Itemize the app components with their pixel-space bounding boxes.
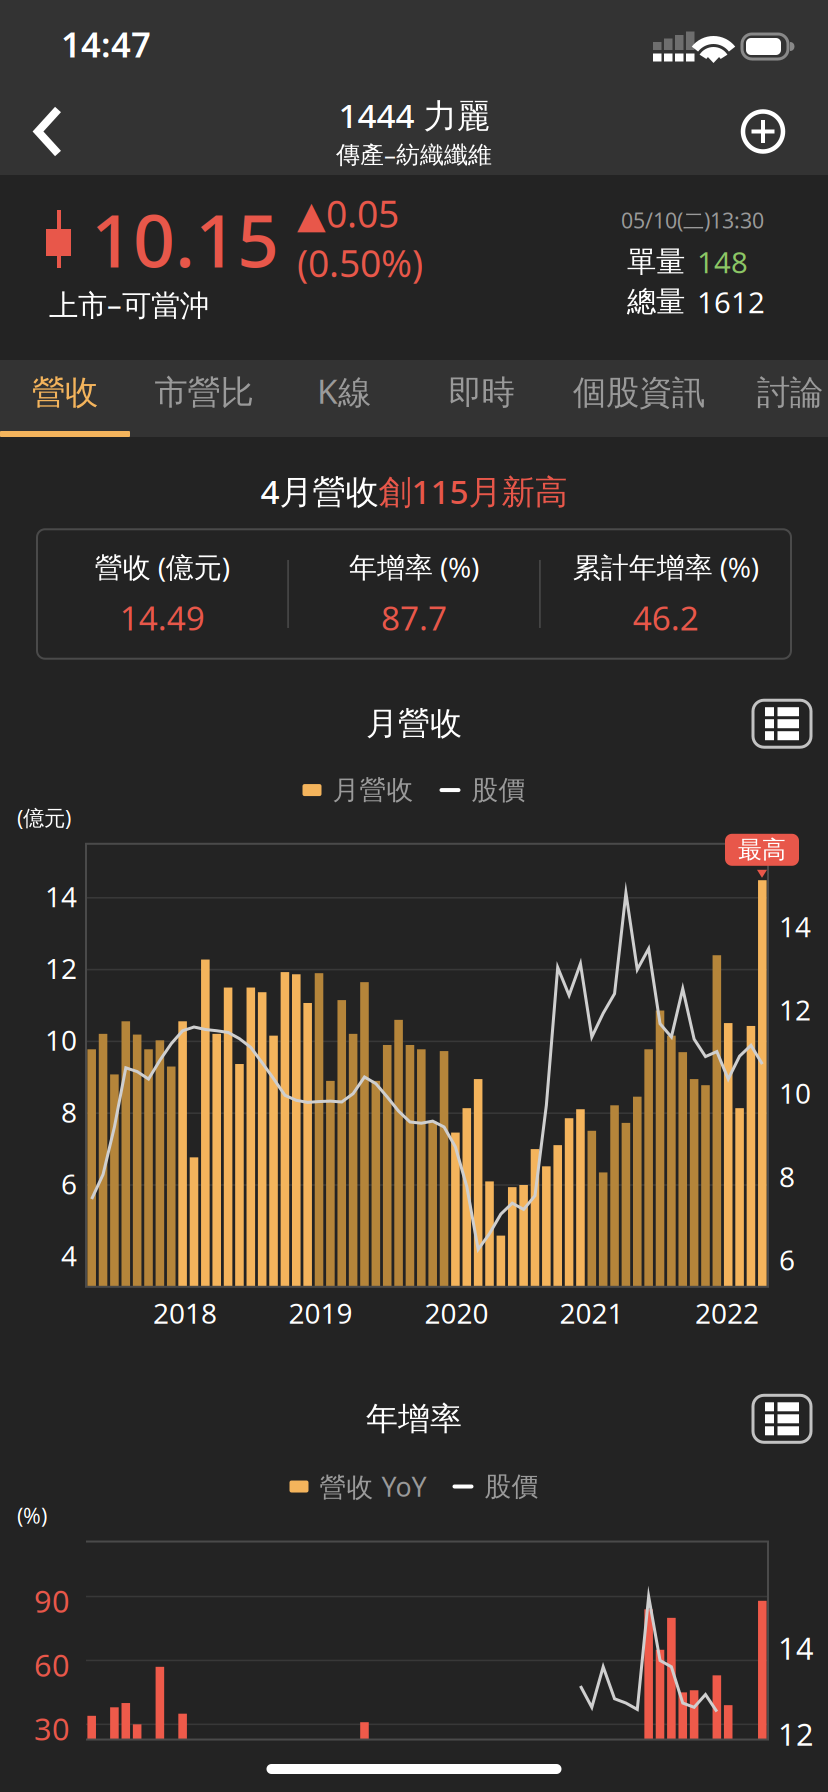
staticText: 46.2: [633, 595, 699, 640]
staticText: 股價: [484, 1470, 538, 1503]
staticText: 30: [34, 1708, 70, 1749]
staticText: 營收 (億元): [95, 548, 230, 585]
staticText: 10: [45, 1021, 77, 1059]
staticText: ▲0.05: [297, 188, 399, 238]
staticText: 14: [779, 908, 811, 945]
staticText: 87.7: [381, 595, 447, 640]
button[interactable]: 營收: [0, 360, 130, 437]
staticText: 05/10(二)13:30: [621, 206, 764, 234]
staticText: 8: [779, 1158, 795, 1195]
button[interactable]: Add to watchlist: [721, 90, 828, 172]
staticText: 2018: [153, 1294, 217, 1331]
staticText: 10: [779, 1074, 811, 1112]
staticText: 月營收: [332, 774, 413, 806]
staticText: 即時: [448, 372, 514, 413]
staticText: 2021: [559, 1294, 623, 1331]
button[interactable]: K線: [278, 360, 410, 437]
button[interactable]: Show table: [748, 696, 816, 752]
button[interactable]: 市營比: [130, 360, 278, 437]
button[interactable]: Show table: [748, 1391, 816, 1447]
staticText: 討論: [757, 372, 823, 413]
staticText: 年增率 (%): [349, 548, 479, 585]
staticText: 2019: [288, 1294, 352, 1331]
staticText: (%): [17, 1501, 47, 1529]
staticText: 營收 YoY: [319, 1469, 426, 1504]
staticText: 14.49: [120, 595, 205, 640]
staticText: 累計年增率 (%): [573, 548, 759, 585]
button[interactable]: 討論: [725, 360, 828, 437]
staticText: 最高: [738, 835, 786, 865]
staticText: 10.15: [91, 190, 279, 288]
staticText: 月營收: [366, 704, 462, 743]
staticText: 12: [778, 1713, 814, 1754]
staticText: 148: [697, 242, 748, 281]
staticText: 4: [61, 1237, 77, 1274]
staticText: 總量: [627, 284, 685, 320]
button[interactable]: 個股資訊: [553, 360, 725, 437]
staticText: 個股資訊: [573, 372, 705, 413]
staticText: 上市–可當沖: [49, 285, 209, 324]
staticText: 90: [34, 1580, 70, 1621]
staticText: 年增率: [366, 1399, 462, 1438]
staticText: 1612: [697, 282, 765, 321]
staticText: K線: [317, 369, 371, 413]
button[interactable]: Back: [0, 88, 92, 174]
staticText: 傳產–紡織纖維: [336, 138, 492, 170]
staticText: 6: [61, 1165, 77, 1202]
staticText: 市營比: [154, 372, 253, 413]
staticText: (0.50%): [297, 238, 423, 288]
staticText: 股價: [471, 774, 525, 806]
button[interactable]: 即時: [410, 360, 553, 437]
staticText: 創115月新高: [378, 469, 567, 513]
staticText: 14: [45, 878, 77, 915]
staticText: 4月營收: [260, 469, 378, 513]
staticText: 單量: [627, 244, 685, 280]
staticText: 8: [61, 1093, 77, 1130]
staticText: 60: [34, 1644, 70, 1685]
staticText: 14: [778, 1627, 814, 1668]
staticText: 1444 力麗: [338, 93, 489, 137]
staticText: 2020: [424, 1294, 488, 1331]
staticText: 6: [779, 1241, 795, 1278]
staticText: 14:47: [61, 21, 151, 67]
staticText: 營收: [32, 372, 98, 413]
staticText: (億元): [17, 803, 71, 832]
staticText: 12: [45, 950, 77, 987]
staticText: 2022: [695, 1294, 759, 1331]
staticText: 12: [779, 991, 811, 1028]
